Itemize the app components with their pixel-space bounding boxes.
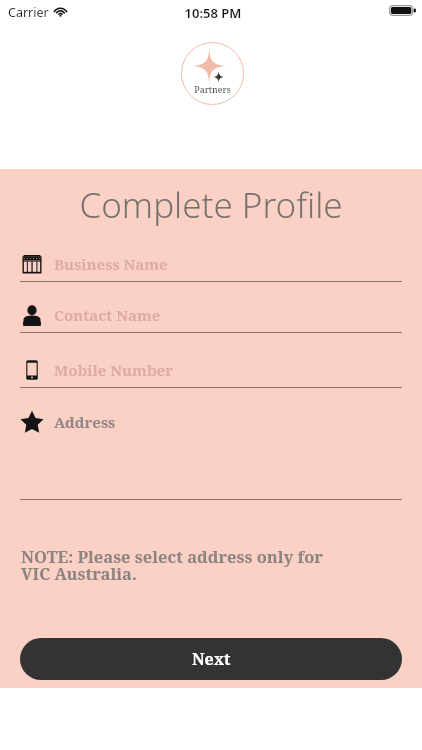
other: Mobile Number	[21, 359, 43, 381]
other: Address	[21, 411, 43, 433]
staticText: Partners	[181, 84, 244, 96]
button[interactable]: Next	[20, 638, 402, 680]
button[interactable]: Business Name	[20, 249, 402, 279]
staticText: 10:58 PM	[2, 4, 422, 22]
other: Contact Name	[21, 304, 43, 326]
other: Partners logo	[181, 42, 244, 105]
staticText: Complete Profile	[0, 181, 422, 229]
staticText: Address	[54, 412, 116, 432]
staticText: NOTE: Please select address only for VIC…	[21, 545, 323, 585]
staticText: Contact Name	[54, 305, 161, 325]
button[interactable]: Contact Name	[20, 300, 402, 330]
staticText: Mobile Number	[54, 360, 174, 380]
button[interactable]: Mobile Number	[20, 355, 402, 385]
other: Business Name	[21, 253, 43, 275]
staticText: Business Name	[54, 254, 168, 274]
button[interactable]: Address	[20, 407, 402, 437]
staticText: Carrier	[8, 4, 49, 18]
staticText: Next	[192, 648, 231, 670]
